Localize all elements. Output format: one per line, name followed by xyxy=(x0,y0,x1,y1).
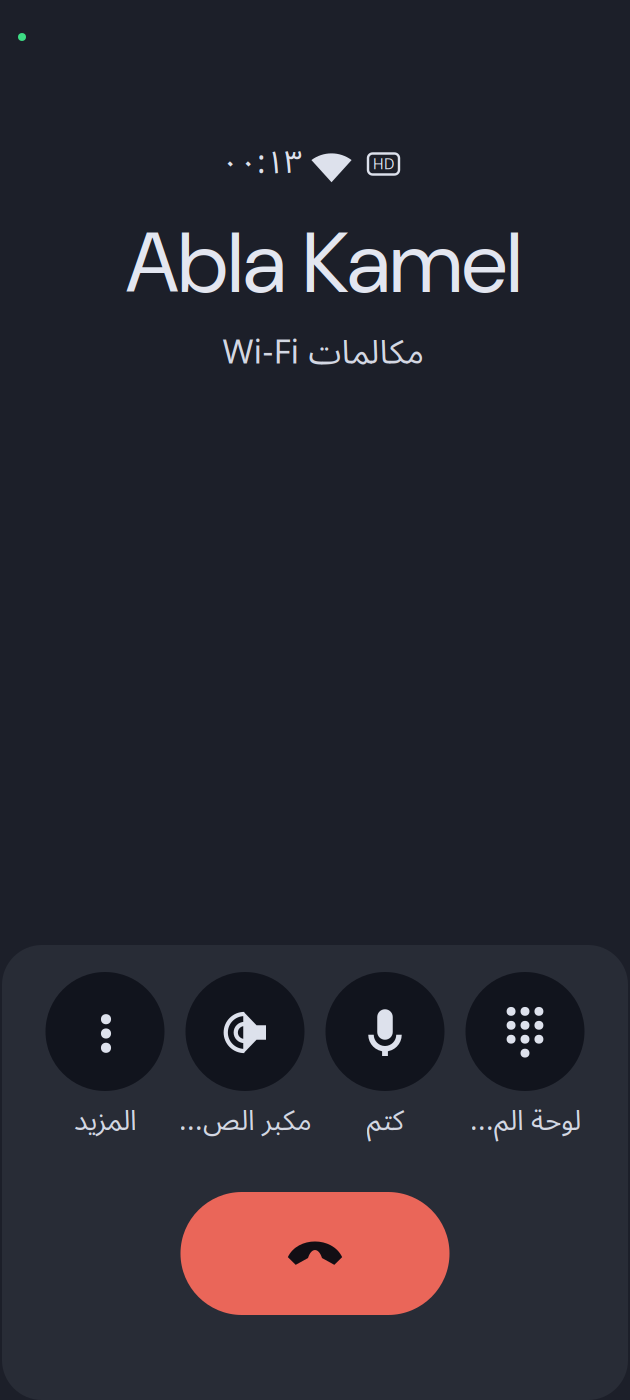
staticText: كتم xyxy=(366,1091,404,1150)
staticText: المزيد xyxy=(73,1091,136,1150)
button[interactable]: كتم xyxy=(315,973,455,1142)
staticText: لوحة الم... xyxy=(469,1091,580,1150)
button[interactable]: End call xyxy=(180,1192,449,1315)
staticText: ٠٠:١٣ xyxy=(221,129,302,197)
staticText: مكبر الص... xyxy=(178,1091,311,1150)
button[interactable]: مكبر الص... xyxy=(175,973,315,1142)
staticText: HD xyxy=(373,154,394,174)
button[interactable]: المزيد xyxy=(35,973,175,1142)
staticText: Abla Kamel xyxy=(126,207,522,318)
button[interactable]: لوحة الم... xyxy=(455,973,595,1142)
staticText: مكالمات Wi-Fi xyxy=(222,318,424,388)
